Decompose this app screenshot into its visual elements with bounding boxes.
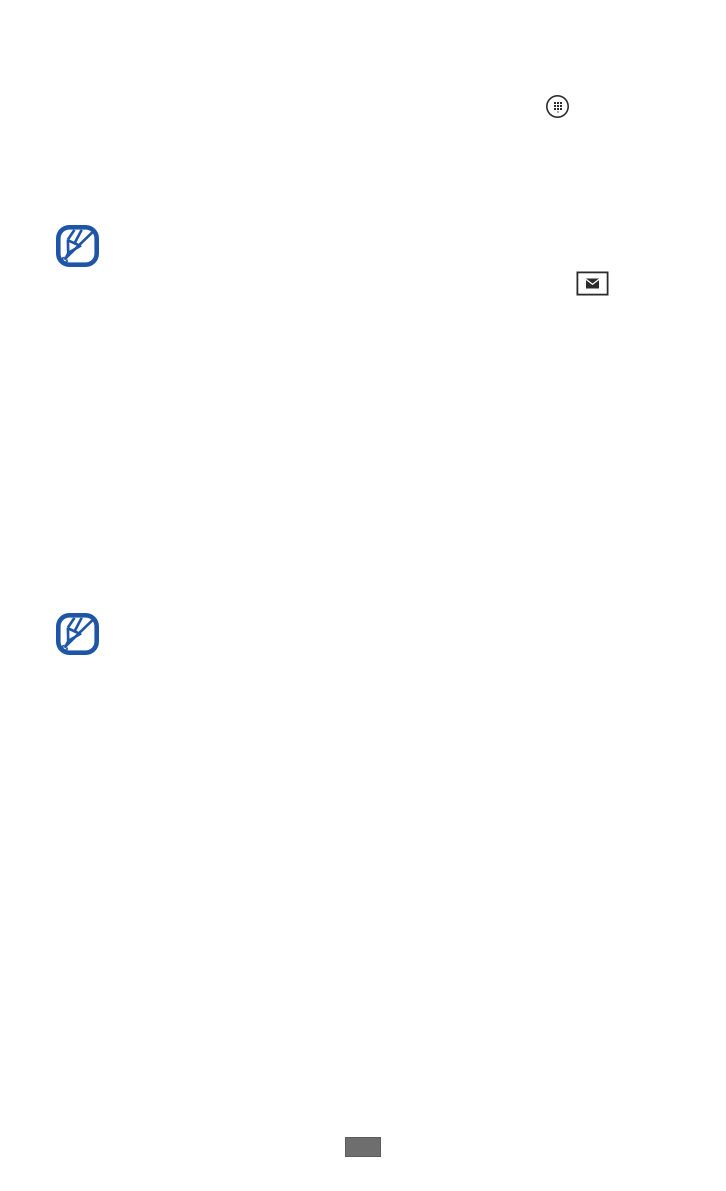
button[interactable]: Apps	[540, 89, 575, 124]
button[interactable]: Memo	[56, 613, 99, 655]
button[interactable]: Messages	[572, 266, 612, 300]
button[interactable]: Memo	[56, 225, 99, 267]
